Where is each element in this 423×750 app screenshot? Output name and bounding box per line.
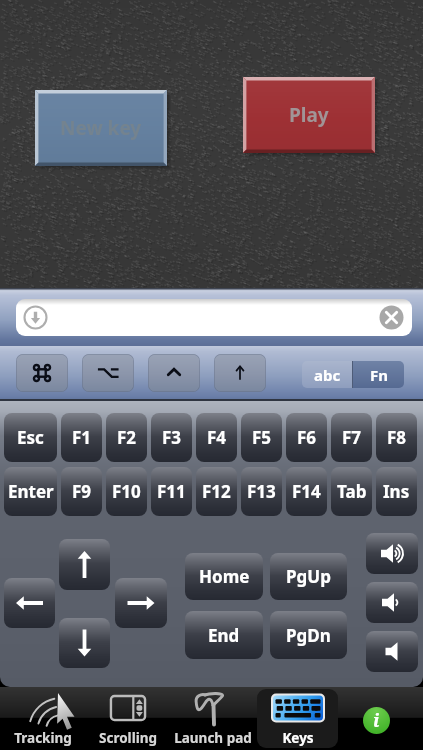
button[interactable]: Mute <box>366 631 418 672</box>
staticText: F8 <box>387 426 407 449</box>
button[interactable]: Tab <box>331 467 372 516</box>
button[interactable]: abc <box>302 361 352 388</box>
staticText: F11 <box>157 480 186 503</box>
button[interactable]: F14 <box>286 467 327 516</box>
staticText: New key <box>60 115 142 141</box>
staticText: F9 <box>72 480 92 503</box>
staticText: PgUp <box>286 565 331 588</box>
button[interactable]: F7 <box>331 413 372 462</box>
staticText: F12 <box>202 480 231 503</box>
button[interactable]: F13 <box>241 467 282 516</box>
staticText: End <box>208 624 240 647</box>
staticText: Tab <box>337 480 367 503</box>
button[interactable]: Up <box>59 539 110 590</box>
staticText: Enter <box>8 480 54 503</box>
button[interactable]: Right <box>115 578 167 628</box>
staticText: i <box>373 708 380 733</box>
staticText: F4 <box>207 426 227 449</box>
staticText: F3 <box>162 426 182 449</box>
staticText: Home <box>199 565 250 588</box>
staticText: F6 <box>297 426 317 449</box>
staticText: Esc <box>17 426 44 449</box>
button[interactable]: F8 <box>376 413 417 462</box>
button[interactable]: Enter <box>4 467 57 516</box>
staticText: F10 <box>112 480 141 503</box>
button[interactable]: F4 <box>196 413 237 462</box>
button[interactable]: Info <box>363 707 390 734</box>
button[interactable]: F2 <box>106 413 147 462</box>
button[interactable]: Volume down <box>366 582 418 623</box>
staticText: F1 <box>72 426 92 449</box>
staticText: F13 <box>247 480 276 503</box>
button[interactable]: F3 <box>151 413 192 462</box>
button[interactable]: shift <box>214 354 266 392</box>
staticText: Scrolling <box>99 729 157 747</box>
button[interactable] <box>16 299 412 336</box>
button[interactable]: F6 <box>286 413 327 462</box>
button[interactable]: Home <box>185 553 263 600</box>
button[interactable]: Keys <box>257 689 338 748</box>
button[interactable]: Down <box>59 618 110 668</box>
button[interactable]: F12 <box>196 467 237 516</box>
staticText: Launch pad <box>174 729 252 747</box>
button[interactable]: ctrl <box>148 354 200 392</box>
staticText: Play <box>289 102 329 128</box>
button[interactable]: Volume up <box>366 533 418 574</box>
button[interactable]: cmd <box>16 354 68 392</box>
button[interactable]: F1 <box>61 413 102 462</box>
button[interactable]: F11 <box>151 467 192 516</box>
staticText: F7 <box>342 426 362 449</box>
staticText: Fn <box>370 365 388 385</box>
button[interactable]: Scrolling <box>87 689 168 748</box>
staticText: PgDn <box>286 624 331 647</box>
staticText: Keys <box>282 729 314 747</box>
button[interactable]: End <box>185 611 263 659</box>
button[interactable]: Tracking <box>2 689 83 748</box>
button[interactable]: Fn <box>353 361 404 388</box>
button[interactable]: F10 <box>106 467 147 516</box>
button[interactable]: opt <box>82 354 134 392</box>
button[interactable]: Play <box>243 77 375 153</box>
button[interactable]: PgUp <box>270 553 347 600</box>
button[interactable]: F5 <box>241 413 282 462</box>
button[interactable]: Ins <box>376 467 417 516</box>
staticText: F14 <box>292 480 321 503</box>
button[interactable]: Esc <box>4 413 57 462</box>
staticText: Ins <box>383 480 410 503</box>
button[interactable]: F9 <box>61 467 102 516</box>
button[interactable]: Launch pad <box>172 689 253 748</box>
staticText: Tracking <box>14 729 72 747</box>
button[interactable]: New key <box>35 90 167 166</box>
staticText: abc <box>314 365 341 385</box>
staticText: F5 <box>252 426 272 449</box>
button[interactable]: Left <box>4 578 55 628</box>
button[interactable]: PgDn <box>270 611 347 659</box>
staticText: F2 <box>117 426 137 449</box>
